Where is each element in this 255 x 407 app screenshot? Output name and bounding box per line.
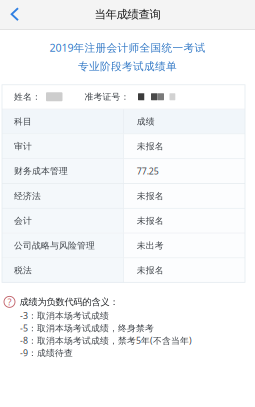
staticText: 77.25	[137, 165, 159, 177]
staticText: -8：取消本场考试成绩，禁考5年(不含当年)	[20, 334, 192, 346]
staticText: 财务成本管理	[14, 166, 68, 177]
staticText: 税法	[14, 265, 32, 276]
staticText: ?	[7, 295, 11, 308]
staticText: 未出考	[137, 240, 164, 251]
staticText: 成绩	[137, 116, 155, 127]
staticText: -3：取消本场考试成绩	[20, 310, 109, 322]
staticText: 未报名	[137, 215, 164, 226]
staticText: 未报名	[137, 265, 164, 276]
staticText: 会计	[14, 215, 32, 226]
staticText: 经济法	[14, 190, 41, 201]
staticText: 审计	[14, 141, 32, 152]
staticText: 2019年注册会计师全国统一考试	[49, 40, 205, 55]
staticText: 准考证号：	[84, 91, 129, 102]
staticText: 科目	[14, 116, 32, 127]
staticText: 姓名：	[14, 91, 41, 102]
staticText: -9：成绩待查	[20, 347, 73, 359]
staticText: -5：取消本场考试成绩，终身禁考	[20, 322, 154, 334]
button[interactable]: Back	[0, 0, 30, 29]
staticText: 公司战略与风险管理	[14, 240, 95, 251]
staticText: 专业阶段考试成绩单	[78, 60, 177, 73]
staticText: 未报名	[137, 141, 164, 152]
staticText: 成绩为负数代码的含义：	[19, 296, 118, 308]
staticText: 当年成绩查询	[94, 7, 160, 22]
staticText: 未报名	[137, 190, 164, 201]
